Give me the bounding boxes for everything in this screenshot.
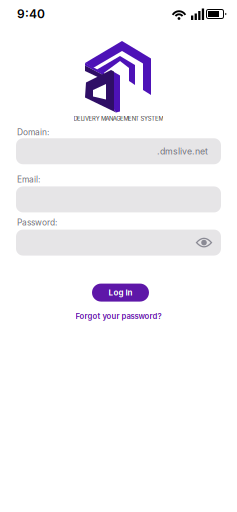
staticText: .dmslive.net xyxy=(157,146,208,156)
button[interactable]: Log In xyxy=(90,284,147,302)
staticText: Password: xyxy=(17,217,57,228)
staticText: Log In xyxy=(108,288,132,297)
button[interactable] xyxy=(16,230,221,256)
staticText: Domain: xyxy=(17,127,49,137)
button[interactable]: Forgot your password? xyxy=(75,312,161,321)
button[interactable]: .dmslive.net xyxy=(16,138,221,164)
staticText: Forgot your password? xyxy=(75,312,161,321)
staticText: Email: xyxy=(17,174,40,184)
staticText: DELIVERY MANAGEMENT SYSTEM xyxy=(73,115,163,122)
staticText: 9:40 xyxy=(17,7,45,21)
